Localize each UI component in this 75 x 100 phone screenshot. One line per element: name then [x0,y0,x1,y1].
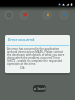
button[interactable]: Ok [18,65,27,70]
button[interactable]: Messages [4,10,14,20]
staticText: Search [37,87,46,91]
button[interactable]: Maps [19,10,29,20]
button[interactable]: Search [33,85,46,92]
staticText: Ok [20,65,25,70]
staticText: Error occurred [8,37,35,42]
button[interactable]: Photos [42,10,52,20]
staticText: An error has occurred in the application… [7,47,68,66]
button[interactable]: Settings [59,10,69,20]
